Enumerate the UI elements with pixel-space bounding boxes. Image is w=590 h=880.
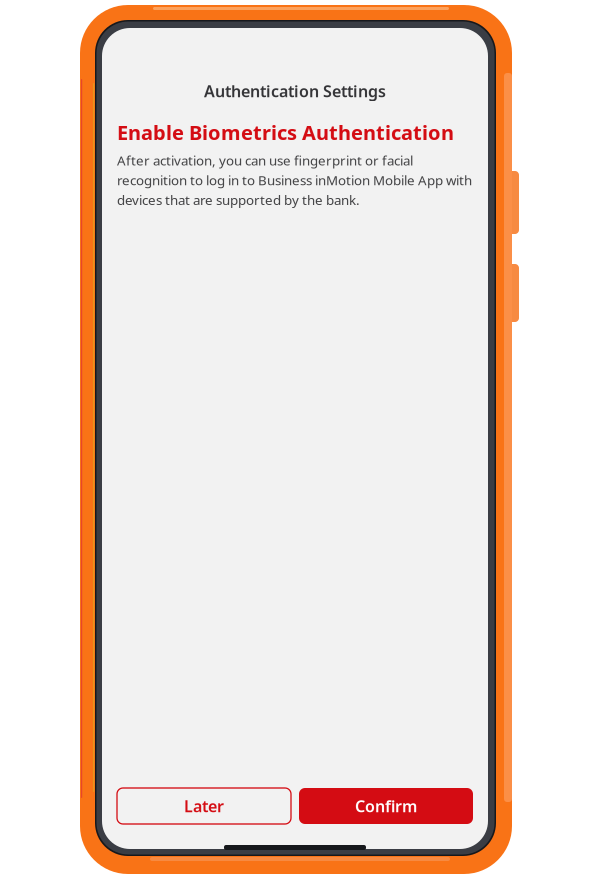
staticText: After activation, you can use fingerprin… [117, 152, 472, 209]
button[interactable]: Later [117, 788, 291, 824]
staticText: Later [184, 795, 224, 817]
staticText: Authentication Settings [204, 80, 386, 102]
staticText: Enable Biometrics Authentication [117, 119, 454, 146]
button[interactable]: Confirm [299, 788, 473, 824]
staticText: Confirm [355, 795, 417, 817]
